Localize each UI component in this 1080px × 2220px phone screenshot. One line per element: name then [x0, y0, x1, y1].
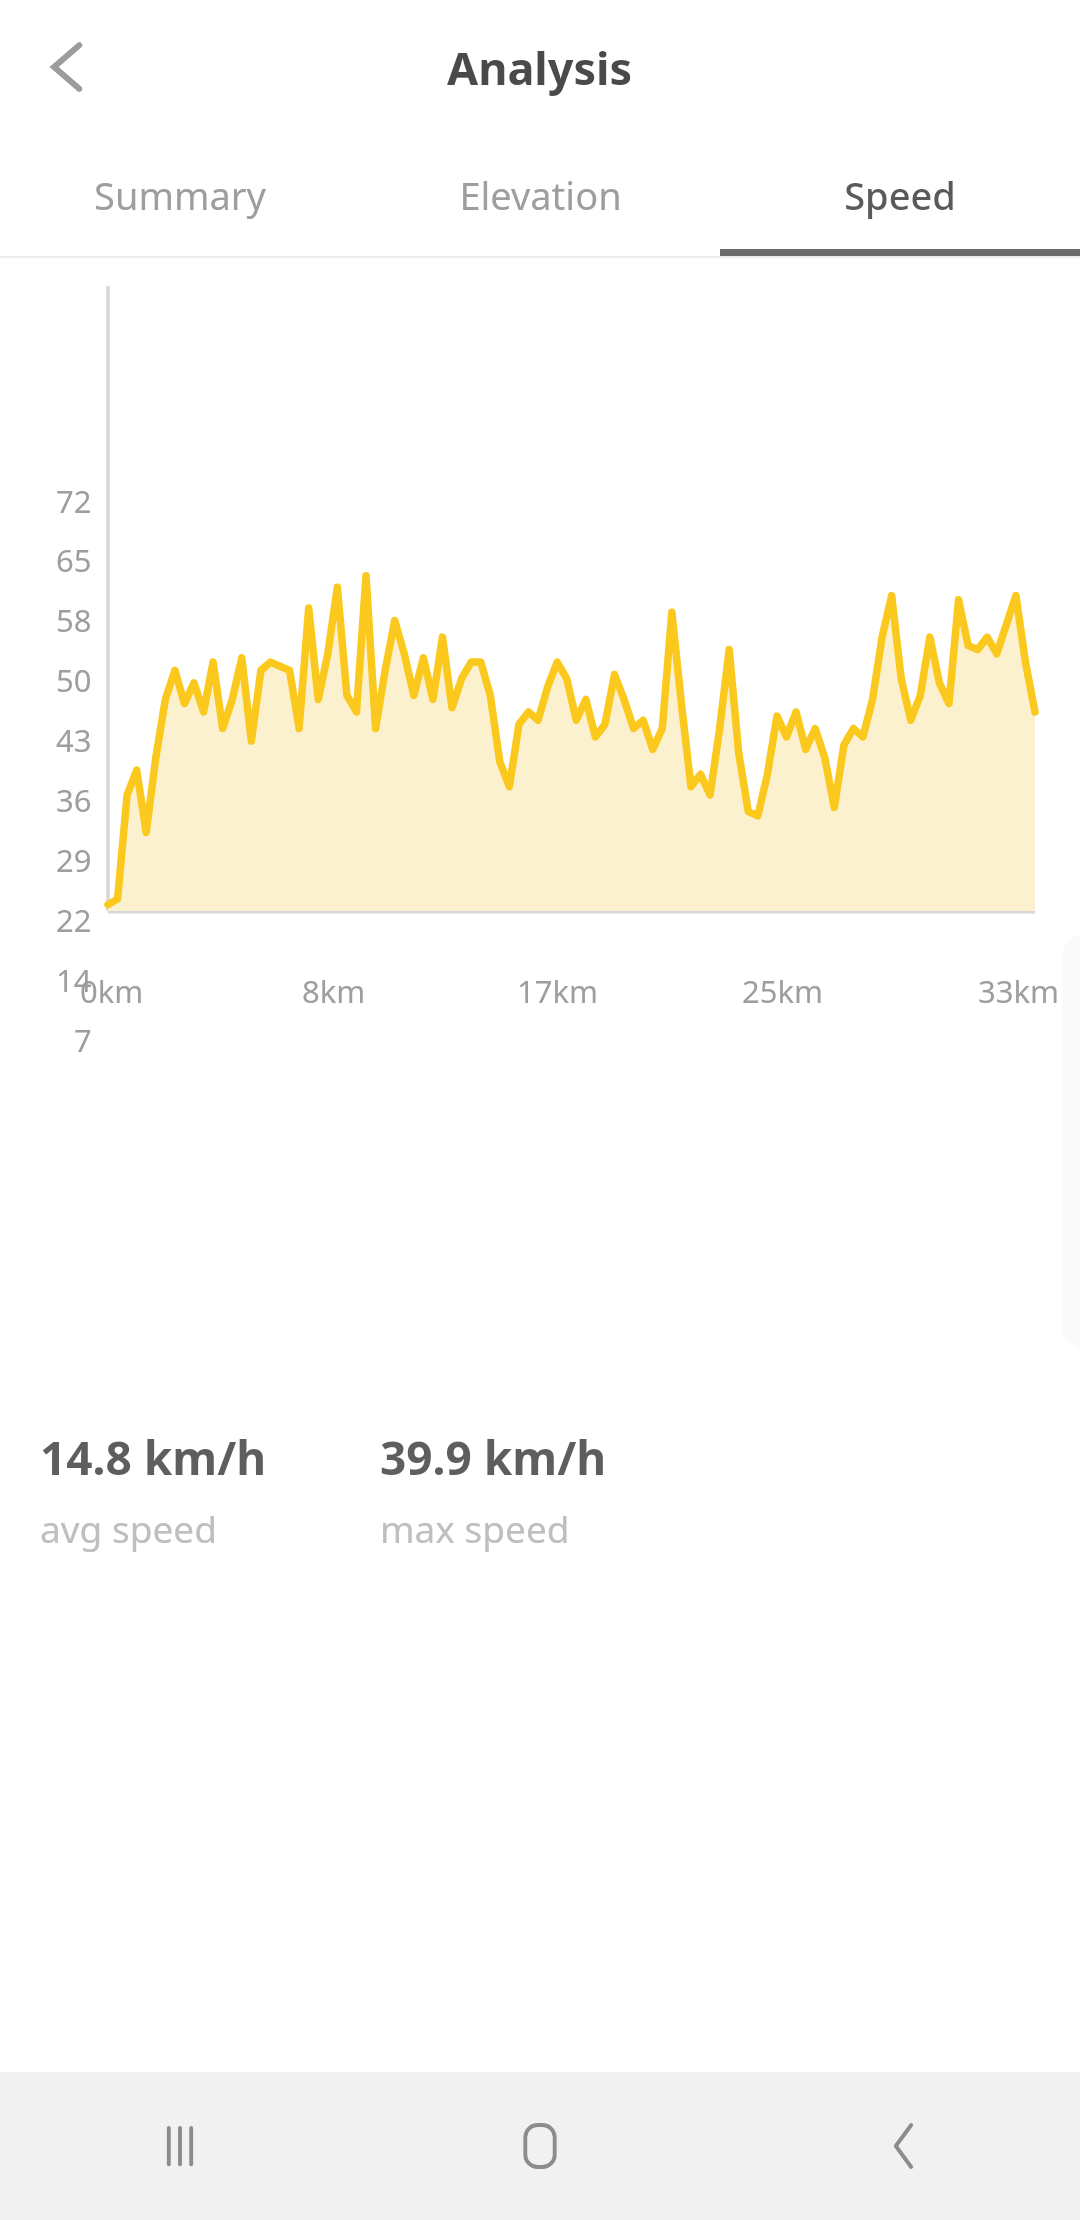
- staticText: 43: [56, 719, 92, 761]
- staticText: avg speed: [40, 1503, 217, 1553]
- button[interactable]: 39.9 km/h: [380, 1426, 720, 1553]
- staticText: 39.9 km/h: [380, 1426, 607, 1489]
- staticText: 22: [56, 899, 92, 941]
- staticText: Summary: [94, 169, 266, 221]
- staticText: Analysis: [447, 37, 633, 98]
- staticText: 58: [56, 599, 92, 641]
- button[interactable]: Speed: [720, 134, 1080, 256]
- staticText: max speed: [380, 1503, 570, 1553]
- staticText: 50: [56, 659, 92, 701]
- button[interactable]: Recent apps: [0, 2072, 360, 2220]
- staticText: 25km: [742, 970, 824, 1012]
- staticText: 8km: [302, 970, 366, 1012]
- staticText: Speed: [844, 169, 956, 221]
- button[interactable]: Elevation: [360, 134, 720, 256]
- staticText: 14: [56, 959, 92, 1001]
- staticText: 14.8 km/h: [40, 1426, 267, 1489]
- button[interactable]: Home: [360, 2072, 720, 2220]
- button[interactable]: Summary: [0, 134, 360, 256]
- staticText: 7: [74, 1019, 92, 1061]
- staticText: 65: [56, 539, 92, 581]
- staticText: 17km: [517, 970, 599, 1012]
- button[interactable]: Back: [720, 2072, 1080, 2220]
- staticText: 36: [56, 779, 92, 821]
- button[interactable]: Back: [10, 15, 114, 119]
- button[interactable]: 14.8 km/h: [40, 1426, 380, 1553]
- staticText: 72: [56, 480, 92, 522]
- staticText: 0km: [80, 970, 144, 1012]
- staticText: 29: [56, 839, 92, 881]
- staticText: 33km: [978, 970, 1060, 1012]
- staticText: Elevation: [459, 169, 622, 221]
